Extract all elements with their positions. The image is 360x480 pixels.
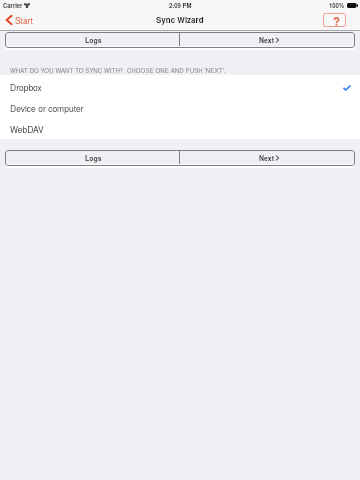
button[interactable]: Help [323, 13, 346, 27]
staticText: 2:09 PM [169, 1, 192, 10]
staticText: Sync Wizard [156, 14, 204, 25]
staticText: Device or computer [10, 102, 84, 114]
staticText: WebDAV [10, 123, 44, 135]
staticText: Carrier [3, 1, 23, 10]
button[interactable]: Start [0, 12, 40, 28]
button[interactable]: WebDAV [0, 117, 360, 138]
staticText: Dropbox [10, 81, 42, 93]
staticText: ? [333, 13, 341, 27]
button[interactable]: Dropbox [0, 75, 360, 96]
staticText: WHAT DO YOU WANT TO SYNC WITH? CHOOSE ON… [10, 66, 226, 75]
staticText: Next [259, 35, 274, 45]
button[interactable]: Logs [5, 32, 179, 48]
staticText: 100% [329, 1, 345, 10]
staticText: Logs [85, 35, 102, 45]
staticText: Logs [85, 153, 102, 163]
staticText: Start [15, 14, 33, 26]
button[interactable]: Device or computer [0, 96, 360, 117]
staticText: Next [259, 153, 274, 163]
button[interactable]: Next [180, 150, 355, 166]
button[interactable]: Logs [5, 150, 179, 166]
button[interactable]: Next [180, 32, 355, 48]
